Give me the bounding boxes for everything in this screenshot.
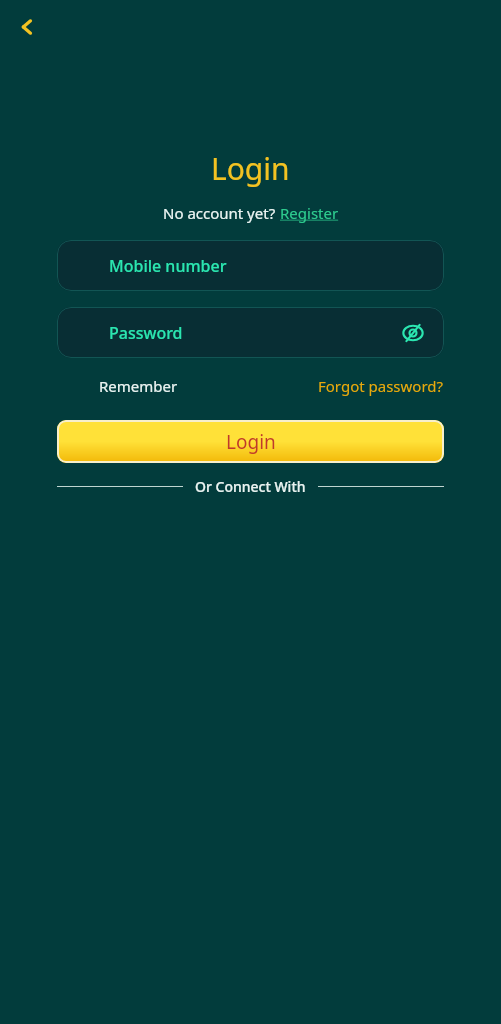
button[interactable]: Back (6, 6, 48, 48)
staticText: Password (109, 322, 183, 344)
button[interactable]: Show password (396, 316, 430, 350)
staticText: Register (280, 203, 339, 223)
button[interactable]: Forgot password? (318, 376, 444, 396)
staticText: No account yet? (163, 203, 280, 223)
button[interactable]: Register (280, 203, 339, 223)
staticText: Mobile number (109, 255, 227, 277)
staticText: Forgot password? (318, 376, 444, 396)
button[interactable]: Mobile number (57, 240, 444, 291)
button[interactable]: Login (57, 420, 444, 463)
button[interactable]: Password (57, 307, 444, 358)
button[interactable]: Remember (99, 376, 178, 396)
staticText: Remember (99, 376, 178, 396)
staticText: Or Connect With (195, 477, 306, 496)
staticText: Login (211, 148, 290, 189)
staticText: Login (226, 429, 276, 455)
